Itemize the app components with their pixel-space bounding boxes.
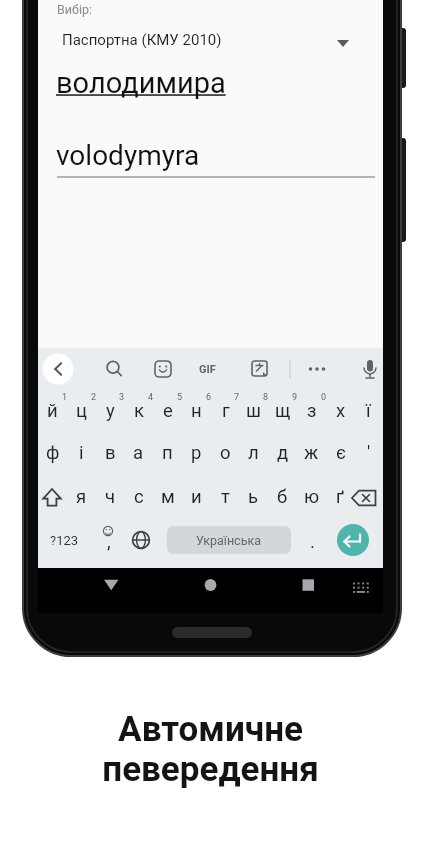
- staticText: volodymyra: [56, 139, 200, 172]
- button[interactable]: є: [326, 432, 355, 474]
- button[interactable]: у: [96, 390, 125, 432]
- button[interactable]: в: [96, 432, 125, 474]
- button[interactable]: володимира: [56, 66, 366, 110]
- button[interactable]: г: [211, 390, 240, 432]
- button[interactable]: [342, 570, 378, 606]
- button[interactable]: о: [211, 432, 240, 474]
- button[interactable]: з: [297, 390, 326, 432]
- button[interactable]: volodymyra: [56, 139, 376, 181]
- button[interactable]: м: [153, 476, 182, 518]
- button[interactable]: б: [268, 476, 297, 518]
- staticText: 0: [321, 392, 327, 403]
- button[interactable]: ф: [38, 432, 67, 474]
- staticText: ц: [76, 400, 87, 422]
- button[interactable]: ґ: [326, 476, 355, 518]
- staticText: ї: [366, 400, 371, 422]
- staticText: GIF: [199, 363, 216, 376]
- staticText: у: [106, 400, 115, 422]
- button[interactable]: [41, 351, 75, 387]
- button[interactable]: [123, 520, 159, 560]
- button[interactable]: [337, 524, 369, 556]
- button[interactable]: к: [124, 390, 153, 432]
- staticText: 3: [119, 392, 125, 403]
- button[interactable]: [343, 476, 385, 518]
- staticText: ж: [304, 442, 319, 464]
- staticText: п: [162, 442, 173, 464]
- button[interactable]: ж: [297, 432, 326, 474]
- staticText: и: [191, 486, 202, 508]
- button[interactable]: [95, 351, 131, 387]
- button[interactable]: ?123: [41, 520, 87, 560]
- staticText: і: [79, 442, 84, 464]
- button[interactable]: е: [153, 390, 182, 432]
- button[interactable]: Паспортна (КМУ 2010): [38, 26, 383, 58]
- staticText: с: [134, 486, 144, 508]
- staticText: а: [133, 442, 144, 464]
- button[interactable]: ц: [67, 390, 96, 432]
- staticText: ф: [46, 442, 60, 464]
- staticText: в: [105, 442, 116, 464]
- staticText: 7: [234, 392, 240, 403]
- button[interactable]: [299, 351, 335, 387]
- staticText: є: [336, 442, 346, 464]
- staticText: к: [134, 400, 144, 422]
- button[interactable]: щ: [268, 390, 297, 432]
- staticText: ь: [248, 486, 259, 508]
- staticText: Вибір:: [57, 2, 93, 17]
- button[interactable]: т: [211, 476, 240, 518]
- button[interactable]: [286, 565, 330, 605]
- button[interactable]: [145, 351, 181, 387]
- button[interactable]: р: [182, 432, 211, 474]
- button[interactable]: GIF: [187, 351, 227, 387]
- button[interactable]: п: [153, 432, 182, 474]
- button[interactable]: с: [124, 476, 153, 518]
- staticText: Українська: [196, 533, 262, 548]
- button[interactable]: й: [38, 390, 67, 432]
- button[interactable]: [241, 351, 277, 387]
- staticText: володимира: [56, 66, 226, 100]
- staticText: щ: [275, 400, 291, 422]
- staticText: ш: [246, 400, 261, 422]
- staticText: б: [277, 486, 288, 508]
- staticText: 1: [62, 392, 68, 403]
- staticText: ?123: [50, 533, 79, 548]
- staticText: й: [47, 400, 58, 422]
- button[interactable]: х: [326, 390, 355, 432]
- staticText: ю: [304, 486, 320, 508]
- staticText: певередення: [0, 749, 421, 790]
- button[interactable]: [189, 565, 233, 605]
- button[interactable]: [89, 565, 133, 605]
- button[interactable]: д: [268, 432, 297, 474]
- button[interactable]: я: [67, 476, 96, 518]
- button[interactable]: ї: [354, 390, 383, 432]
- button[interactable]: ь: [239, 476, 268, 518]
- button[interactable]: н: [182, 390, 211, 432]
- button[interactable]: а: [124, 432, 153, 474]
- staticText: н: [191, 400, 202, 422]
- staticText: 2: [91, 392, 97, 403]
- staticText: о: [220, 442, 231, 464]
- staticText: л: [248, 442, 259, 464]
- button[interactable]: .: [298, 526, 328, 556]
- button[interactable]: ': [354, 432, 383, 474]
- staticText: 4: [148, 392, 154, 403]
- staticText: я: [76, 486, 87, 508]
- button[interactable]: и: [182, 476, 211, 518]
- staticText: 8: [263, 392, 269, 403]
- staticText: 5: [177, 392, 183, 403]
- button[interactable]: ю: [297, 476, 326, 518]
- staticText: ,: [107, 530, 111, 552]
- button[interactable]: [31, 476, 73, 518]
- button[interactable]: ш: [239, 390, 268, 432]
- staticText: е: [163, 400, 173, 422]
- button[interactable]: ,: [94, 526, 124, 556]
- button[interactable]: і: [67, 432, 96, 474]
- button[interactable]: [352, 351, 388, 387]
- button[interactable]: ч: [96, 476, 125, 518]
- staticText: з: [307, 400, 317, 422]
- staticText: ч: [105, 486, 116, 508]
- staticText: Автомичне: [0, 709, 421, 750]
- button[interactable]: л: [239, 432, 268, 474]
- button[interactable]: Українська: [167, 526, 291, 554]
- staticText: 6: [206, 392, 212, 403]
